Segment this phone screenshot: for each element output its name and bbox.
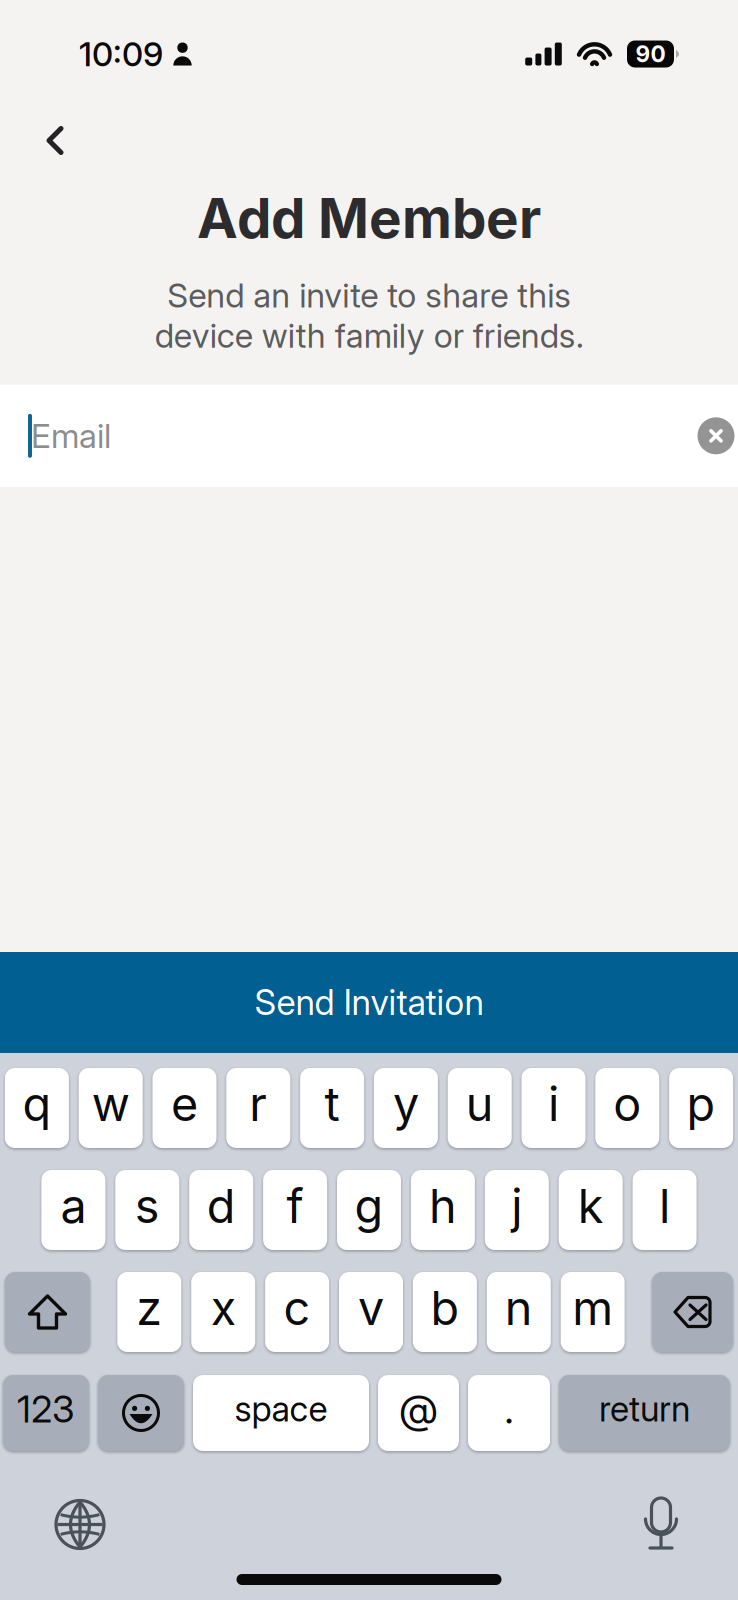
staticText: space <box>234 1388 327 1430</box>
staticText: p <box>687 1076 716 1132</box>
staticText: 10:09 <box>79 34 163 74</box>
staticText: v <box>358 1280 384 1336</box>
button[interactable]: Email <box>28 385 694 487</box>
staticText: x <box>211 1280 236 1336</box>
staticText: Add Member <box>197 185 541 251</box>
staticText: u <box>466 1076 494 1132</box>
staticText: 90 <box>635 40 665 68</box>
button[interactable]: l <box>633 1170 697 1250</box>
staticText: f <box>287 1178 304 1234</box>
button[interactable]: i <box>521 1068 585 1148</box>
staticText: Send Invitation <box>254 981 483 1023</box>
button[interactable]: c <box>265 1272 329 1352</box>
staticText: e <box>171 1076 198 1132</box>
staticText: . <box>504 1385 513 1433</box>
staticText: y <box>393 1076 419 1132</box>
button[interactable]: Dictate <box>640 1498 682 1551</box>
button[interactable]: j <box>485 1170 549 1250</box>
staticText: g <box>354 1178 383 1234</box>
staticText: k <box>578 1178 604 1234</box>
button[interactable]: k <box>559 1170 623 1250</box>
button[interactable]: 123 <box>3 1375 89 1451</box>
staticText: h <box>429 1178 457 1234</box>
staticText: @ <box>399 1385 438 1433</box>
button[interactable]: p <box>669 1068 733 1148</box>
button[interactable]: y <box>374 1068 438 1148</box>
button[interactable]: u <box>448 1068 512 1148</box>
staticText: z <box>136 1280 162 1336</box>
staticText: q <box>22 1076 51 1132</box>
staticText: m <box>572 1280 613 1336</box>
staticText: l <box>659 1178 670 1234</box>
button[interactable]: Send Invitation <box>0 952 738 1053</box>
button[interactable]: t <box>300 1068 364 1148</box>
staticText: c <box>284 1280 311 1336</box>
button[interactable]: m <box>561 1272 625 1352</box>
button[interactable]: b <box>413 1272 477 1352</box>
staticText: o <box>613 1076 641 1132</box>
staticText: r <box>249 1076 267 1132</box>
button[interactable]: Delete <box>652 1272 733 1352</box>
button[interactable]: Emoji <box>98 1375 184 1451</box>
button[interactable]: g <box>337 1170 401 1250</box>
button[interactable]: @ <box>378 1375 459 1451</box>
staticText: i <box>548 1076 559 1132</box>
button[interactable]: return <box>559 1375 730 1451</box>
button[interactable]: n <box>487 1272 551 1352</box>
button[interactable]: z <box>117 1272 181 1352</box>
button[interactable]: e <box>152 1068 216 1148</box>
button[interactable]: q <box>5 1068 69 1148</box>
staticText: n <box>505 1280 533 1336</box>
staticText: j <box>511 1178 522 1234</box>
button[interactable]: Back <box>24 102 86 167</box>
staticText: w <box>92 1076 130 1132</box>
button[interactable]: space <box>193 1375 369 1451</box>
staticText: b <box>430 1280 459 1336</box>
staticText: d <box>207 1178 236 1234</box>
button[interactable]: o <box>595 1068 659 1148</box>
staticText: Send an invite to share this device with… <box>154 275 583 356</box>
button[interactable]: s <box>115 1170 179 1250</box>
button[interactable]: Shift <box>5 1272 90 1352</box>
button[interactable]: h <box>411 1170 475 1250</box>
staticText: a <box>60 1178 86 1234</box>
button[interactable]: . <box>468 1375 550 1451</box>
button[interactable]: f <box>263 1170 327 1250</box>
button[interactable]: Switch keyboard <box>56 1500 104 1548</box>
staticText: s <box>135 1178 160 1234</box>
button[interactable]: Clear text <box>694 414 738 458</box>
staticText: return <box>599 1388 690 1430</box>
button[interactable]: d <box>189 1170 253 1250</box>
button[interactable]: x <box>191 1272 255 1352</box>
staticText: 123 <box>17 1386 75 1432</box>
button[interactable]: a <box>41 1170 105 1250</box>
button[interactable]: w <box>79 1068 143 1148</box>
staticText: Email <box>31 416 111 456</box>
staticText: t <box>325 1076 340 1132</box>
button[interactable]: r <box>226 1068 290 1148</box>
button[interactable]: v <box>339 1272 403 1352</box>
